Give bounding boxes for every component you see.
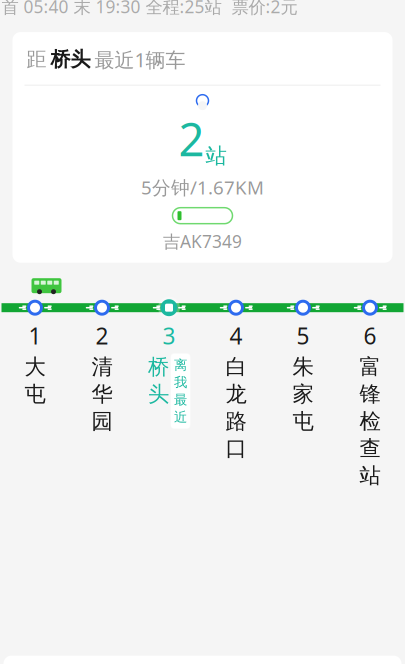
staticText: 华 [91,381,112,407]
staticText: 朱 [292,354,313,380]
staticText: 屯 [292,408,313,434]
staticText: 桥 [148,354,169,380]
staticText: 3 [162,321,175,351]
staticText: 路 [225,408,246,434]
staticText: 屯 [24,381,45,407]
staticText: 6 [363,321,376,351]
button[interactable]: 1 [1,321,68,492]
staticText: 吉AK7349 [163,230,242,253]
staticText: 我 [174,374,187,391]
staticText: 清 [91,354,112,380]
staticText: 富 [359,354,380,380]
staticText: 头 [148,381,169,407]
staticText: 桥头 [50,47,90,72]
staticText: 龙 [225,381,246,407]
staticText: 最 [174,391,187,408]
staticText: 查 [359,435,380,462]
staticText: 2 [178,109,204,169]
staticText: 近 [174,409,187,425]
staticText: 5 [296,321,309,351]
staticText: 首 05:40 末 19:30 全程:25站 票价:2元 [1,0,297,18]
staticText: 5分钟/1.67KM [141,175,264,200]
staticText: 离 [174,357,187,373]
button[interactable]: 4 [202,321,269,492]
staticText: 检 [359,408,380,434]
staticText: 园 [91,408,112,434]
staticText: 距 [26,47,46,72]
staticText: 站 [359,463,380,489]
staticText: 家 [292,381,313,407]
staticText: 最近1辆车 [94,46,185,73]
staticText: 2 [95,321,108,351]
staticText: 白 [225,354,246,380]
button[interactable]: 5 [269,321,336,492]
staticText: 大 [24,354,45,380]
staticText: 锋 [359,381,380,407]
staticText: 口 [225,435,246,462]
button[interactable]: 6 [336,321,403,492]
button[interactable]: 2 [68,321,135,492]
staticText: 1 [28,321,41,351]
button[interactable]: 3 [135,321,202,492]
staticText: 4 [229,321,242,351]
staticText: 站 [205,143,226,169]
